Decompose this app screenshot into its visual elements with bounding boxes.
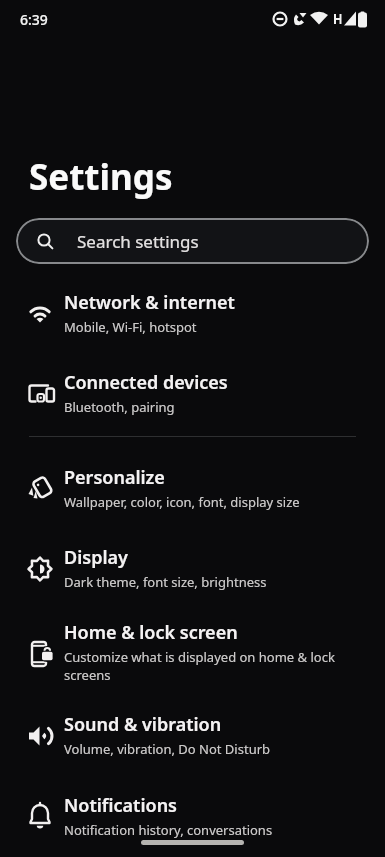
staticText: Personalize <box>64 465 165 490</box>
staticText: Home & lock screen <box>64 620 238 645</box>
button[interactable]: Notifications <box>0 774 385 857</box>
staticText: Sound & vibration <box>64 712 222 737</box>
staticText: 6:39 <box>20 10 48 29</box>
staticText: Settings <box>29 153 173 201</box>
button[interactable]: Personalize <box>0 447 385 528</box>
button[interactable]: Sound & vibration <box>0 696 385 774</box>
staticText: Dark theme, font size, brightness <box>64 573 267 591</box>
staticText: screens <box>64 666 111 684</box>
staticText: Search settings <box>77 230 199 253</box>
button[interactable]: Home & lock screen <box>0 608 385 696</box>
staticText: Customize what is displayed on home & lo… <box>64 648 335 666</box>
staticText: Network & internet <box>64 290 235 315</box>
staticText: Connected devices <box>64 370 228 395</box>
staticText: Wallpaper, color, icon, font, display si… <box>64 493 300 511</box>
button[interactable]: Network & internet <box>0 273 385 353</box>
staticText: Display <box>64 545 128 570</box>
button[interactable]: Search settings <box>16 218 369 264</box>
staticText: Mobile, Wi-Fi, hotspot <box>64 318 197 336</box>
staticText: Bluetooth, pairing <box>64 398 175 416</box>
staticText: Notification history, conversations <box>64 821 273 839</box>
button[interactable]: Display <box>0 528 385 608</box>
button[interactable]: Connected devices <box>0 353 385 433</box>
staticText: Notifications <box>64 793 177 818</box>
staticText: Volume, vibration, Do Not Disturb <box>64 740 271 758</box>
